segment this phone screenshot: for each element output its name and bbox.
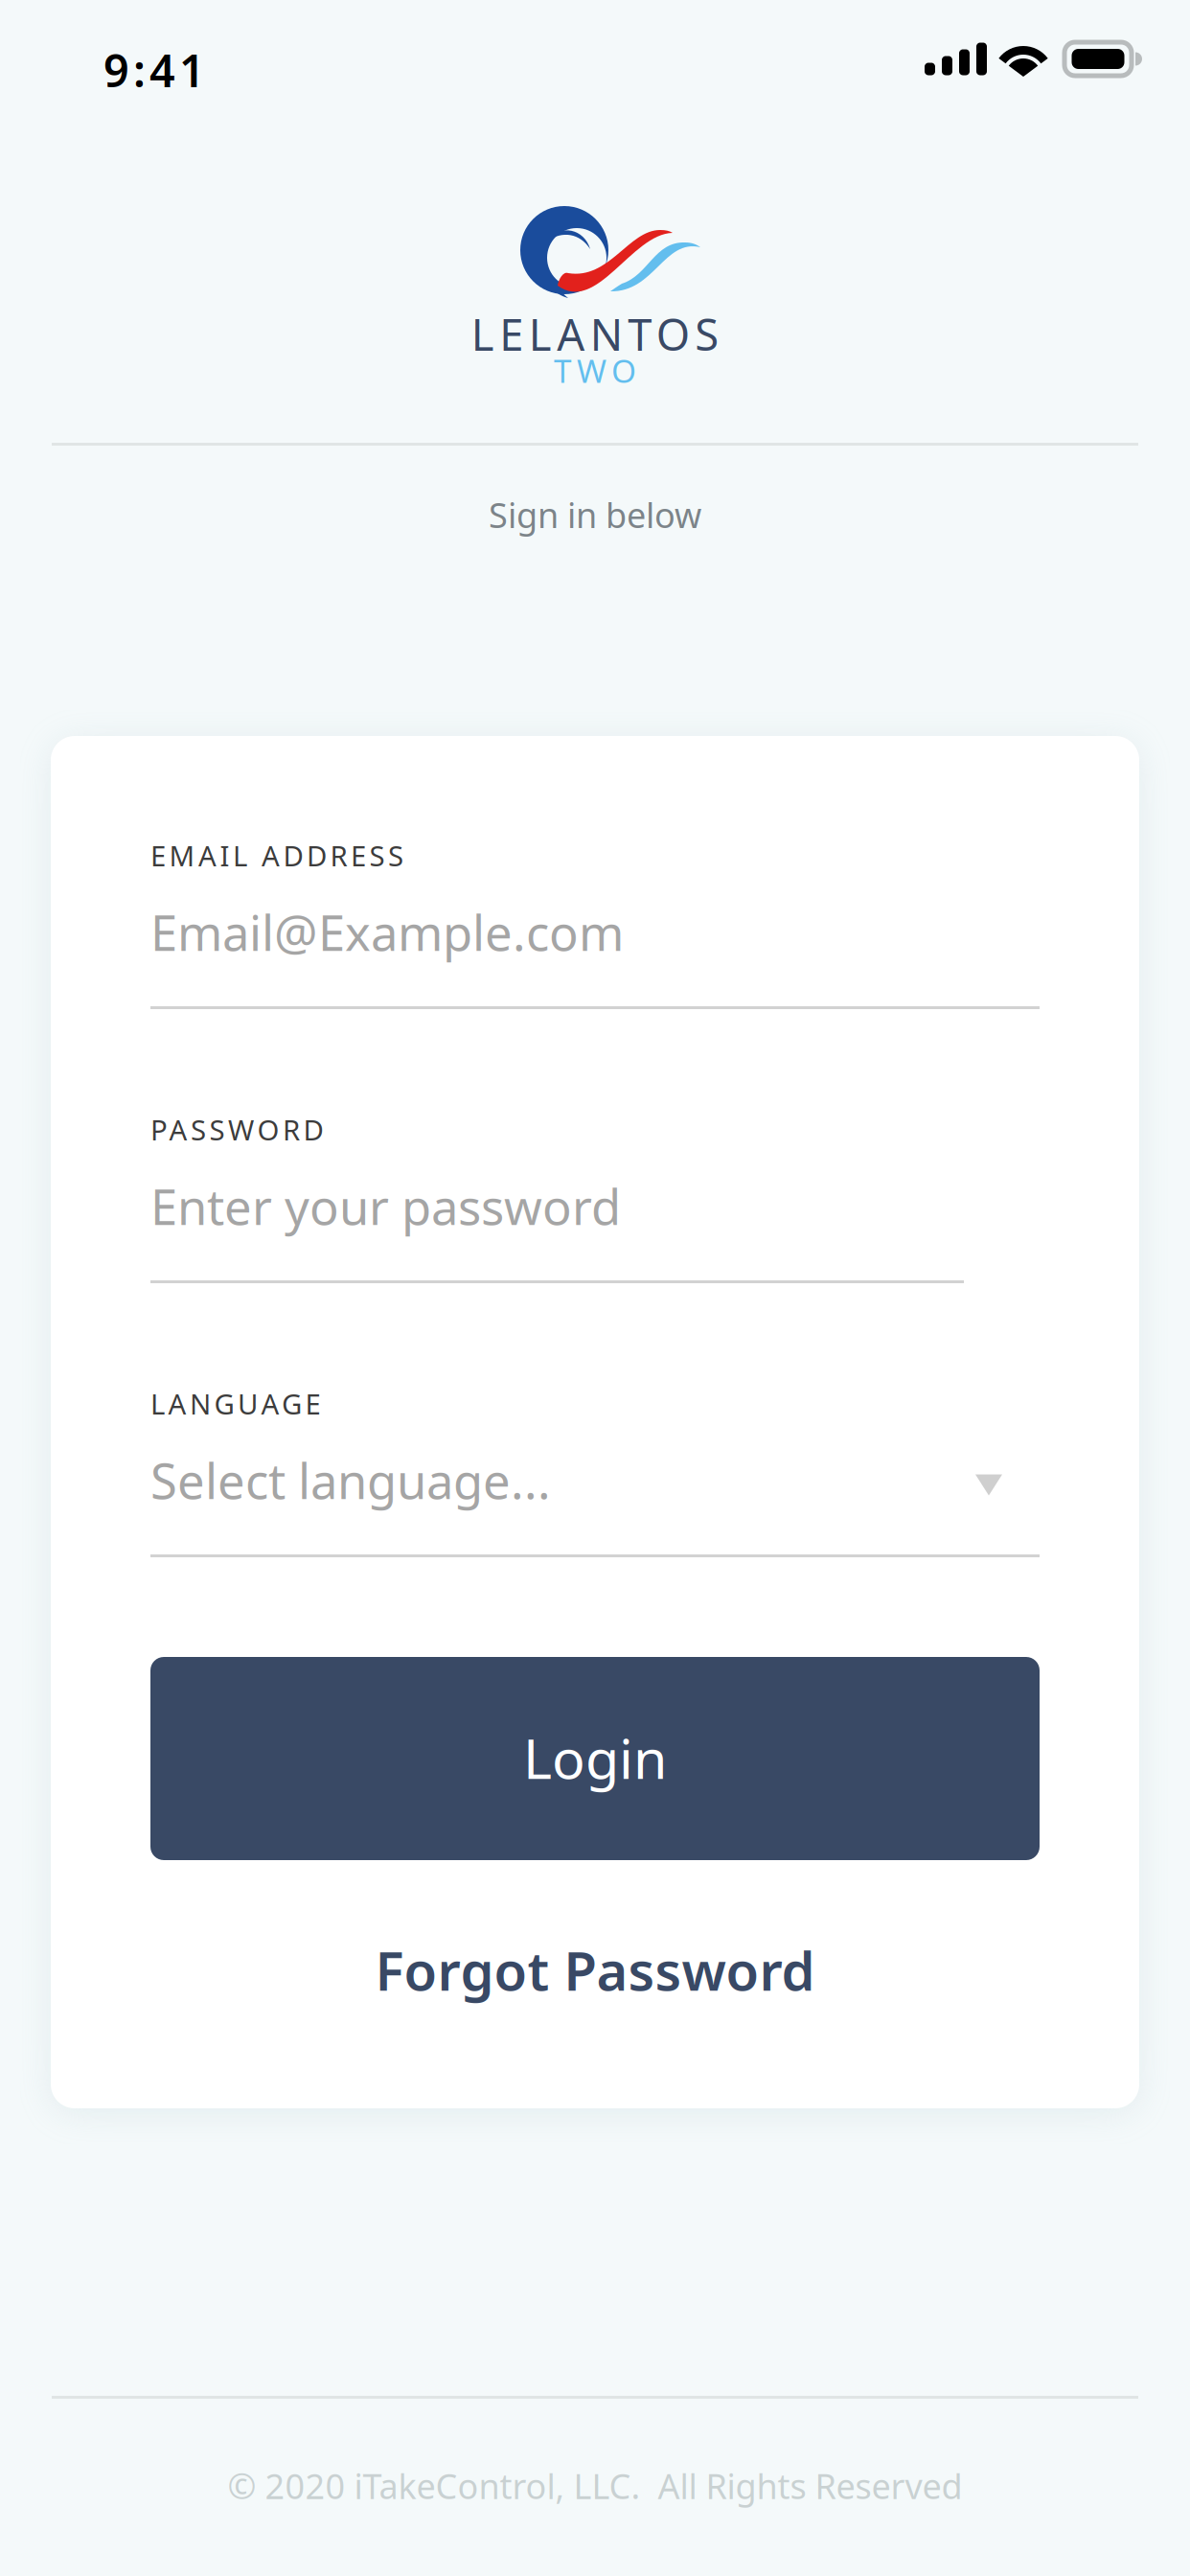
- staticText: TWO: [554, 349, 636, 392]
- staticText: Forgot Password: [375, 1934, 815, 2006]
- button[interactable]: Login: [150, 1657, 1040, 1860]
- staticText: LELANTOS: [471, 305, 719, 363]
- button[interactable]: Forgot Password: [150, 1943, 1040, 1996]
- staticText: © 2020 iTakeControl, LLC. All Rights Res…: [228, 2463, 962, 2509]
- staticText: Email@Example.com: [150, 900, 624, 964]
- staticText: Sign in below: [489, 492, 701, 538]
- staticText: EMAIL ADDRESS: [150, 837, 403, 874]
- staticText: PASSWORD: [150, 1111, 323, 1148]
- staticText: Enter your password: [150, 1174, 621, 1238]
- staticText: Select language...: [150, 1448, 551, 1512]
- staticText: LANGUAGE: [150, 1385, 320, 1422]
- staticText: Login: [523, 1721, 667, 1794]
- staticText: 9:41: [103, 40, 205, 100]
